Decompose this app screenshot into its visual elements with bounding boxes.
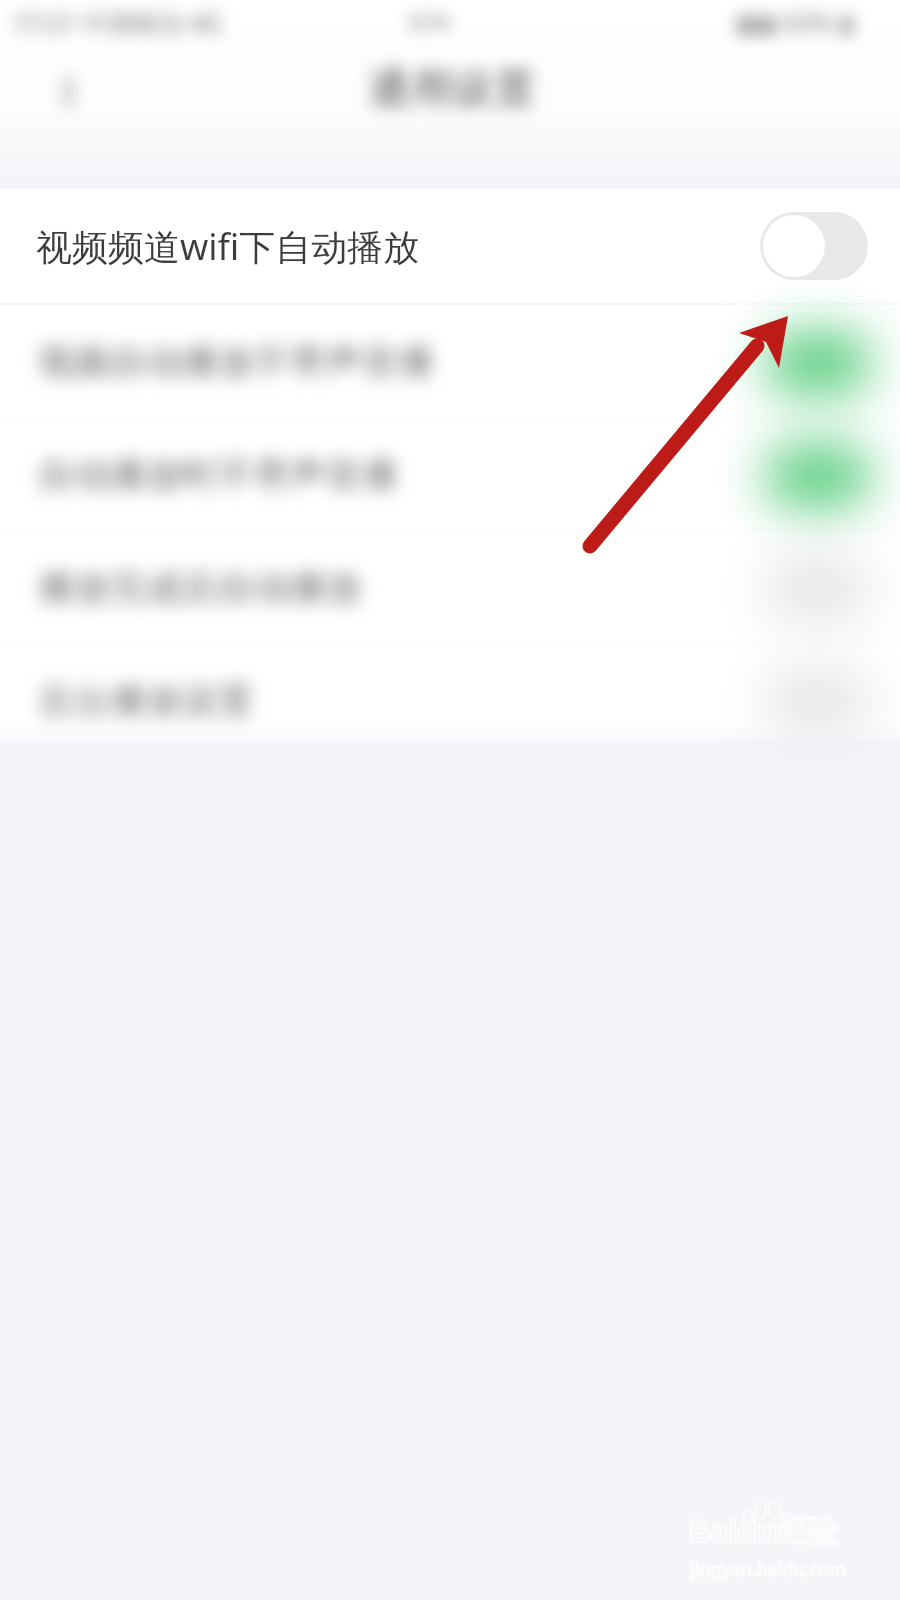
staticText: 视频频道wifi下自动播放: [36, 222, 420, 271]
staticText: 后台播放设置: [38, 678, 254, 723]
staticText: 播放完成后自动播放: [38, 565, 362, 610]
staticText: 视频自动播放不带声音播: [38, 339, 434, 384]
staticText: Baidu经验: [689, 1509, 840, 1551]
staticText: ▮▮▮ 83% ▮: [736, 5, 854, 39]
button[interactable]: 视频频道wifi下自动播放: [0, 189, 900, 303]
staticText: 自动播放时不带声音播: [38, 452, 398, 497]
button[interactable]: Setting row: [0, 305, 900, 416]
staticText: jingyan.baidu.com: [690, 1557, 846, 1582]
button[interactable]: Setting row: [0, 531, 900, 642]
button[interactable]: Setting row: [0, 644, 900, 741]
button[interactable]: Auto play on wifi toggle: [760, 212, 868, 280]
button[interactable]: Setting row: [0, 418, 900, 529]
staticText: 通用设置: [368, 63, 536, 116]
staticText: 17:21 中国移动 4G: [12, 5, 222, 39]
staticText: 83%: [408, 6, 452, 36]
